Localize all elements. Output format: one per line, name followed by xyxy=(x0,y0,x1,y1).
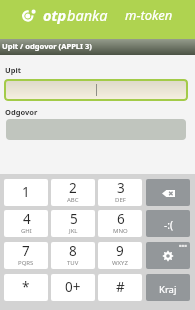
staticText: DEF xyxy=(115,196,126,204)
button[interactable]: Backspace xyxy=(146,179,190,206)
staticText: 9 xyxy=(116,242,124,260)
staticText: m-token xyxy=(125,6,173,24)
staticText: otp xyxy=(43,5,67,25)
staticText: PQRS xyxy=(18,259,34,267)
staticText: banka xyxy=(67,5,108,25)
staticText: 5 xyxy=(70,210,78,228)
staticText: Upit xyxy=(5,65,21,75)
staticText: ▪▪▪ xyxy=(179,243,188,248)
button[interactable]: Kraj xyxy=(146,274,190,301)
staticText: 7 xyxy=(22,242,30,260)
staticText: -:( xyxy=(164,218,173,232)
button[interactable]: 5 xyxy=(51,210,95,237)
staticText: 6 xyxy=(117,210,125,228)
button[interactable]: 9 xyxy=(98,242,142,269)
staticText: 1 xyxy=(22,183,30,201)
button[interactable] xyxy=(4,79,188,101)
button[interactable]: Settings xyxy=(146,242,190,269)
staticText: 3 xyxy=(117,179,125,197)
button[interactable]: 4 xyxy=(4,210,48,237)
button[interactable]: 1 xyxy=(4,179,48,206)
staticText: Kraj xyxy=(159,283,177,296)
staticText: 8 xyxy=(69,242,77,260)
staticText: 4 xyxy=(23,210,31,228)
button[interactable]: # xyxy=(98,274,142,301)
button[interactable]: 7 xyxy=(4,242,48,269)
staticText: Upit / odgovor (APPLI 3) xyxy=(2,41,92,51)
button[interactable]: 2 xyxy=(51,179,95,206)
button[interactable]: 0+ xyxy=(51,274,95,301)
staticText: ABC xyxy=(67,196,79,204)
staticText: GHI xyxy=(21,227,32,235)
button[interactable]: 3 xyxy=(98,179,142,206)
staticText: WXYZ xyxy=(112,259,128,267)
button[interactable]: * xyxy=(4,274,48,301)
staticText: TUV xyxy=(67,259,79,267)
staticText: JKL xyxy=(69,227,78,235)
button[interactable]: 6 xyxy=(98,210,142,237)
staticText: Odgovor xyxy=(5,107,38,117)
button[interactable]: 8 xyxy=(51,242,95,269)
staticText: * xyxy=(22,278,30,296)
staticText: 0+ xyxy=(65,278,81,296)
button[interactable]: Emoticon xyxy=(146,210,190,237)
staticText: # xyxy=(116,278,125,296)
staticText: 2 xyxy=(69,179,77,197)
staticText: MNO xyxy=(113,227,128,235)
